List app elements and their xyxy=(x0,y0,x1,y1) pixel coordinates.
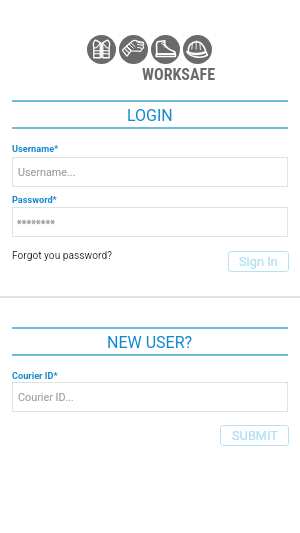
other: Safety glove xyxy=(119,35,148,64)
other: Safety vest xyxy=(87,35,116,64)
other: Hard hat xyxy=(183,35,212,64)
button[interactable]: Sign In xyxy=(228,251,289,272)
staticText: Password* xyxy=(12,194,57,205)
staticText: Sign In xyxy=(239,254,278,269)
button[interactable]: SUBMIT xyxy=(220,425,289,446)
button[interactable]: Forgot you password? xyxy=(12,250,112,262)
staticText: WORKSAFE xyxy=(142,65,216,84)
staticText: Forgot you password? xyxy=(12,250,112,262)
button[interactable]: Username... xyxy=(12,157,288,187)
staticText: SUBMIT xyxy=(232,428,278,443)
button[interactable]: Courier ID... xyxy=(12,382,288,412)
staticText: NEW USER? xyxy=(107,333,193,352)
button[interactable] xyxy=(12,207,288,237)
staticText: Username... xyxy=(18,166,76,179)
other: Safety boot xyxy=(151,35,180,64)
staticText: Courier ID... xyxy=(18,391,74,404)
staticText: LOGIN xyxy=(127,106,173,125)
staticText: Username* xyxy=(12,143,59,154)
staticText: Courier ID* xyxy=(12,370,58,381)
